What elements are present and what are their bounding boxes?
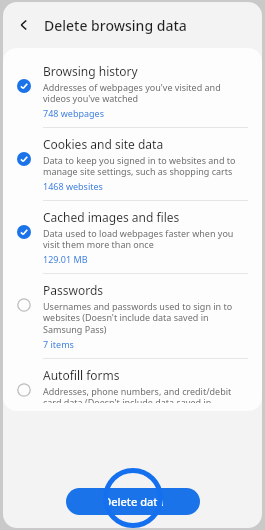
staticText: Addresses, phone numbers, and credit/deb… [43, 385, 250, 403]
staticText: Data to keep you signed in to websites a… [43, 154, 250, 178]
staticText: Delete browsing data [44, 16, 187, 35]
button[interactable]: Delete data [66, 488, 200, 515]
staticText: Delete data [103, 494, 164, 509]
button[interactable]: Autofill forms [3, 359, 262, 411]
button[interactable]: Back [12, 13, 36, 37]
button[interactable]: Passwords [3, 274, 262, 358]
staticText: Autofill forms [43, 367, 120, 383]
staticText: Usernames and passwords used to sign in … [43, 300, 250, 336]
staticText: 748 webpages [43, 107, 104, 119]
staticText: Browsing history [43, 63, 138, 79]
staticText: 129.01 MB [43, 253, 88, 265]
staticText: Cached images and files [43, 209, 180, 225]
staticText: 1468 websites [43, 180, 103, 192]
staticText: Data used to load webpages faster when y… [43, 227, 250, 251]
staticText: 7 items [43, 338, 74, 350]
button[interactable]: Cached images and files [3, 201, 262, 273]
staticText: Passwords [43, 282, 104, 298]
button[interactable]: Cookies and site data [3, 128, 262, 200]
staticText: Addresses of webpages you've visited and… [43, 81, 250, 105]
button[interactable]: Browsing history [3, 55, 262, 127]
staticText: Cookies and site data [43, 136, 164, 152]
